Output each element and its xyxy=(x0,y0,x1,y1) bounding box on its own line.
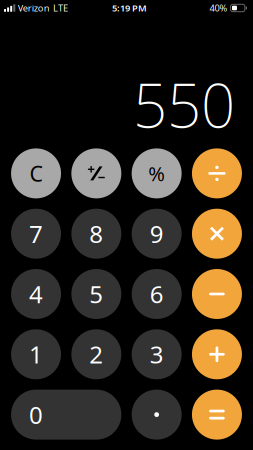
staticText: 40% xyxy=(210,2,228,14)
staticText: 1 xyxy=(29,338,43,370)
button[interactable]: Minus xyxy=(192,269,242,319)
button[interactable]: 0 xyxy=(11,390,121,440)
staticText: 5 xyxy=(89,278,103,310)
button[interactable]: Divide xyxy=(192,148,242,198)
staticText: 550 xyxy=(133,65,235,144)
button[interactable]: Plus minus xyxy=(71,148,121,198)
button[interactable]: 2 xyxy=(71,329,121,379)
staticText: 0 xyxy=(29,399,43,431)
staticText: 5:19 PM xyxy=(112,2,147,14)
staticText: 8 xyxy=(89,218,103,250)
button[interactable]: 3 xyxy=(132,329,182,379)
button[interactable]: 1 xyxy=(11,329,61,379)
button[interactable]: 6 xyxy=(132,269,182,319)
button[interactable]: Multiply xyxy=(192,209,242,259)
staticText: Verizon xyxy=(18,2,50,14)
button[interactable]: Decimal point xyxy=(132,390,182,440)
button[interactable]: Plus xyxy=(192,329,242,379)
button[interactable]: Equals xyxy=(192,390,242,440)
staticText: 9 xyxy=(150,218,164,250)
button[interactable]: C xyxy=(11,148,61,198)
staticText: 2 xyxy=(89,338,103,370)
staticText: 4 xyxy=(29,278,43,310)
button[interactable]: % xyxy=(132,148,182,198)
staticText: 7 xyxy=(29,218,43,250)
staticText: 3 xyxy=(150,338,164,370)
staticText: LTE xyxy=(53,2,68,14)
staticText: 6 xyxy=(150,278,164,310)
button[interactable]: 4 xyxy=(11,269,61,319)
staticText: C xyxy=(29,159,42,187)
button[interactable]: 5 xyxy=(71,269,121,319)
button[interactable]: 9 xyxy=(132,209,182,259)
staticText: % xyxy=(148,160,165,187)
button[interactable]: 7 xyxy=(11,209,61,259)
button[interactable]: 8 xyxy=(71,209,121,259)
